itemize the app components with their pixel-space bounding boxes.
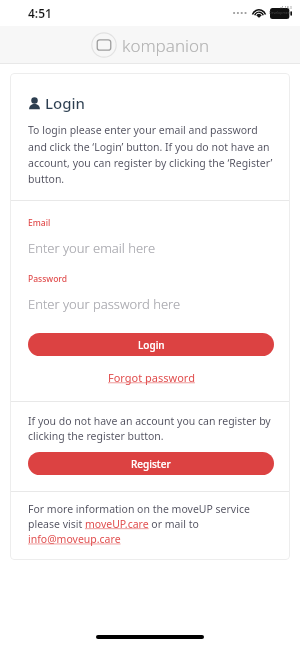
button[interactable]: Login: [28, 333, 274, 356]
staticText: Login: [138, 338, 165, 352]
staticText: 4:51: [28, 5, 52, 21]
button[interactable]: Enter your password here: [28, 293, 274, 315]
button[interactable]: Enter your email here: [28, 237, 274, 259]
staticText: v1.18.3: [280, 5, 292, 10]
staticText: Email: [28, 217, 51, 229]
staticText: Register: [131, 457, 171, 471]
staticText: Password: [28, 273, 68, 285]
staticText: Enter your password here: [28, 295, 181, 313]
staticText: kompanion: [122, 34, 210, 57]
button[interactable]: Forgot password: [106, 368, 197, 387]
staticText: Login: [45, 93, 85, 113]
staticText: Development: [269, 10, 292, 15]
staticText: For more information on the moveUP servi…: [28, 502, 274, 546]
staticText: Forgot password: [108, 370, 195, 385]
staticText: To login please enter your email and pas…: [28, 123, 274, 186]
staticText: Enter your email here: [28, 239, 156, 257]
staticText: If you do not have an account you can re…: [28, 414, 274, 443]
button[interactable]: Register: [28, 452, 274, 475]
